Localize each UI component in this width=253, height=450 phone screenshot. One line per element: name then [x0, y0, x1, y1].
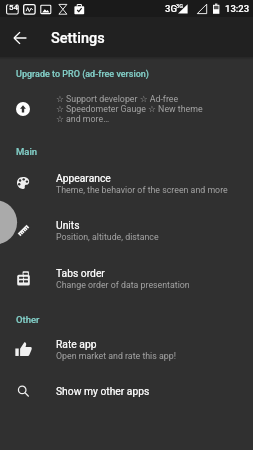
- staticText: ☆ Speedometer Gauge ☆ New theme: [56, 104, 203, 114]
- staticText: 54: [9, 3, 19, 12]
- staticText: Settings: [51, 30, 105, 47]
- button[interactable]: Back: [6, 24, 34, 52]
- staticText: Theme, the behavior of the screen and mo…: [56, 185, 228, 195]
- staticText: Units: [56, 219, 80, 231]
- staticText: Change order of data presentation: [56, 280, 190, 290]
- staticText: Open market and rate this app!: [56, 351, 176, 361]
- staticText: Main: [16, 146, 38, 157]
- staticText: Show my other apps: [56, 385, 150, 397]
- staticText: Appearance: [56, 172, 111, 184]
- staticText: Rate app: [56, 338, 97, 350]
- button[interactable]: Appearance: [0, 159, 253, 207]
- staticText: ☆ and more…: [56, 114, 110, 124]
- staticText: Other: [16, 314, 40, 325]
- staticText: Upgrade to PRO (ad-free version): [16, 69, 149, 80]
- staticText: ☆ Support developer ☆ Ad-free: [56, 94, 179, 104]
- button[interactable]: Show my other apps: [0, 367, 253, 415]
- staticText: 13:23: [225, 3, 250, 14]
- button[interactable]: Units: [0, 206, 253, 254]
- button[interactable]: ☆ Support developer ☆ Ad-free: [0, 89, 253, 129]
- staticText: 3G: [165, 3, 177, 14]
- staticText: 3G: [176, 3, 183, 9]
- staticText: Tabs order: [56, 267, 105, 279]
- staticText: Position, altitude, distance: [56, 232, 159, 242]
- button[interactable]: Rate app: [0, 325, 253, 373]
- button[interactable]: Tabs order: [0, 254, 253, 302]
